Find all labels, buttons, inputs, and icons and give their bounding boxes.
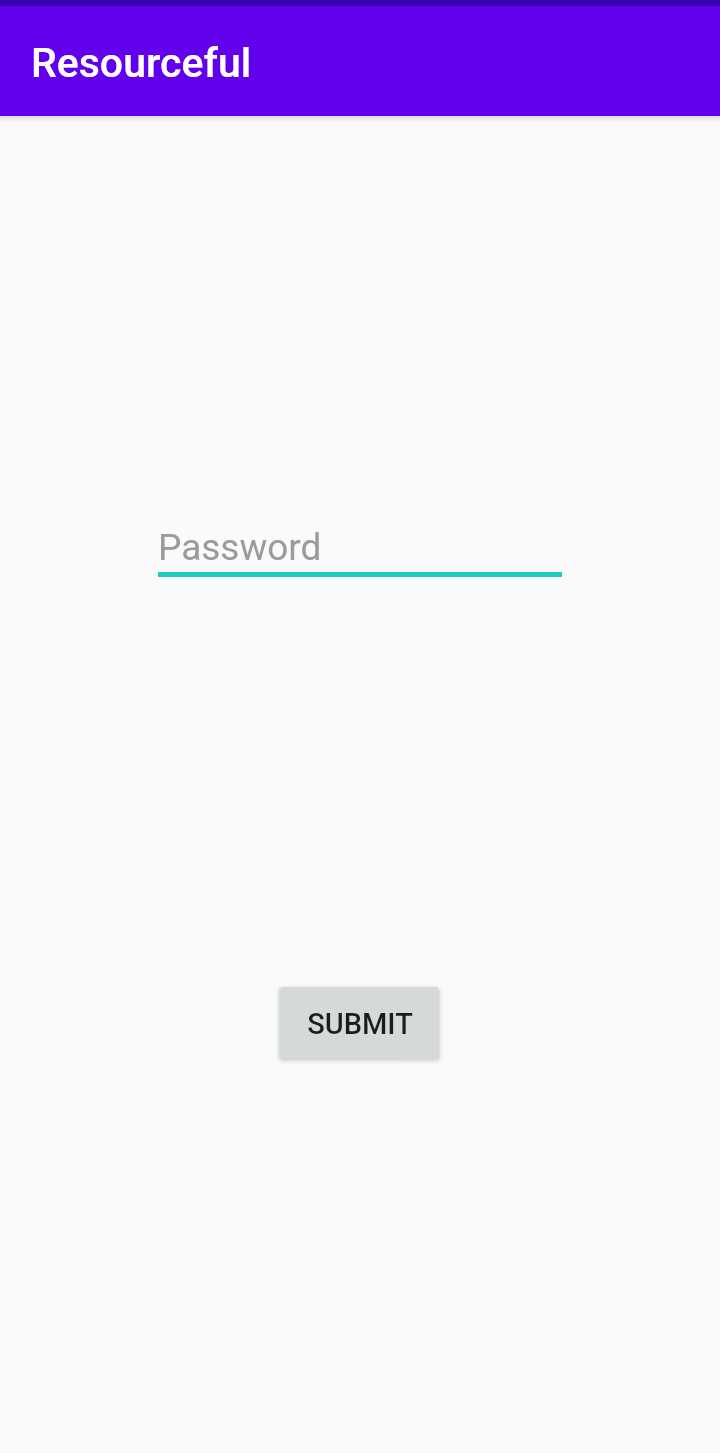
button[interactable]: SUBMIT [279, 987, 439, 1059]
staticText: Password [158, 526, 322, 569]
button[interactable]: Password field [158, 505, 562, 577]
button[interactable]: Resourceful [0, 6, 720, 116]
staticText: SUBMIT [307, 1007, 413, 1041]
staticText: Resourceful [31, 39, 252, 87]
